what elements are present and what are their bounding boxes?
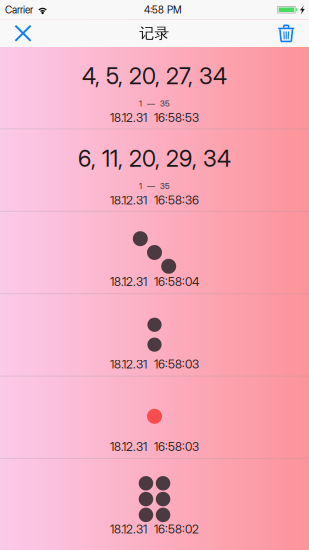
staticText: 18.12.31 (110, 274, 147, 289)
button[interactable]: 18.12.31 (0, 459, 309, 540)
staticText: 18.12.31 (110, 439, 147, 454)
staticText: 4:58 PM (144, 4, 182, 16)
staticText: 1 (139, 99, 142, 108)
staticText: 18.12.31 (110, 522, 147, 536)
staticText: 4, 5, 20, 27, 34 (82, 62, 227, 90)
staticText: — (147, 181, 155, 191)
staticText: 16:58:02 (154, 522, 199, 536)
staticText: 16:58:53 (154, 110, 199, 125)
staticText: 16:58:04 (154, 274, 199, 289)
staticText: 18.12.31 (110, 357, 147, 371)
staticText: 记录 (139, 24, 169, 42)
staticText: 35 (160, 99, 170, 108)
staticText: 6, 11, 20, 29, 34 (78, 145, 231, 172)
button[interactable]: 18.12.31 (0, 212, 309, 293)
staticText: 16:58:03 (154, 439, 199, 454)
button[interactable]: 4, 5, 20, 27, 34 (0, 47, 309, 128)
button[interactable]: Delete (268, 19, 304, 47)
staticText: 35 (160, 181, 170, 191)
button[interactable]: 18.12.31 (0, 377, 309, 458)
staticText: — (147, 99, 155, 108)
staticText: Carrier (5, 4, 33, 16)
staticText: 16:58:36 (154, 193, 199, 207)
button[interactable]: Close (5, 19, 41, 47)
staticText: 16:58:03 (154, 357, 199, 371)
button[interactable]: 18.12.31 (0, 294, 309, 376)
staticText: 1 (139, 181, 142, 191)
staticText: 18.12.31 (110, 193, 147, 207)
button[interactable]: 6, 11, 20, 29, 34 (0, 129, 309, 211)
staticText: 18.12.31 (110, 110, 147, 125)
